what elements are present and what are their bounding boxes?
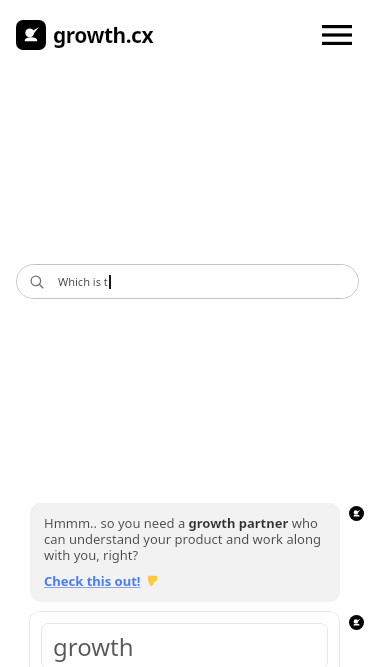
button[interactable]: growth.cx [16,16,154,54]
button[interactable]: growth [29,611,340,667]
staticText: Hmmm.. so you need a growth partner who … [44,514,326,563]
staticText: Check this out! [44,572,141,590]
button[interactable]: Hmmm.. so you need a growth partner who … [30,503,340,602]
staticText: growth [53,630,134,663]
button[interactable]: Which is t [16,264,359,299]
button[interactable]: Open menu [315,13,359,57]
staticText: growth.cx [53,21,154,50]
button[interactable]: Check this out! [44,572,159,590]
staticText: Which is t [58,274,108,289]
